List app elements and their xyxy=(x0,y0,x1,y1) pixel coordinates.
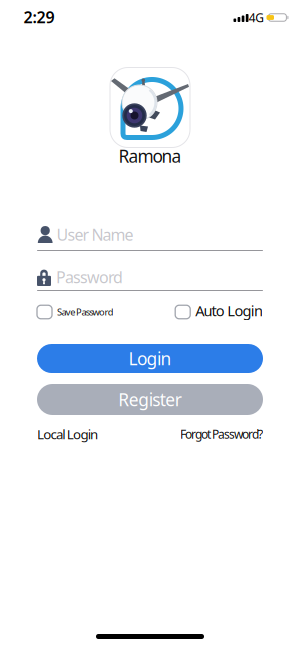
button[interactable]: Password xyxy=(37,265,263,291)
button[interactable]: Forgot Password? xyxy=(180,426,263,442)
staticText: 4G xyxy=(249,9,264,25)
button[interactable]: Local Login xyxy=(37,425,98,443)
button[interactable]: User Name xyxy=(37,225,263,251)
staticText: Save Password xyxy=(57,306,114,318)
staticText: Forgot Password? xyxy=(180,426,263,442)
staticText: Auto Login xyxy=(195,301,263,320)
staticText: Login xyxy=(128,347,171,370)
button[interactable]: Auto Login xyxy=(175,302,263,322)
staticText: 2:29 xyxy=(23,6,54,28)
staticText: Ramona xyxy=(118,144,181,167)
staticText: Register xyxy=(118,388,182,411)
staticText: Password xyxy=(56,266,123,288)
button[interactable]: Save Password xyxy=(37,305,114,319)
button[interactable]: Login xyxy=(37,344,263,373)
staticText: Local Login xyxy=(37,425,98,443)
button[interactable]: Register xyxy=(37,384,263,415)
staticText: User Name xyxy=(56,224,133,245)
